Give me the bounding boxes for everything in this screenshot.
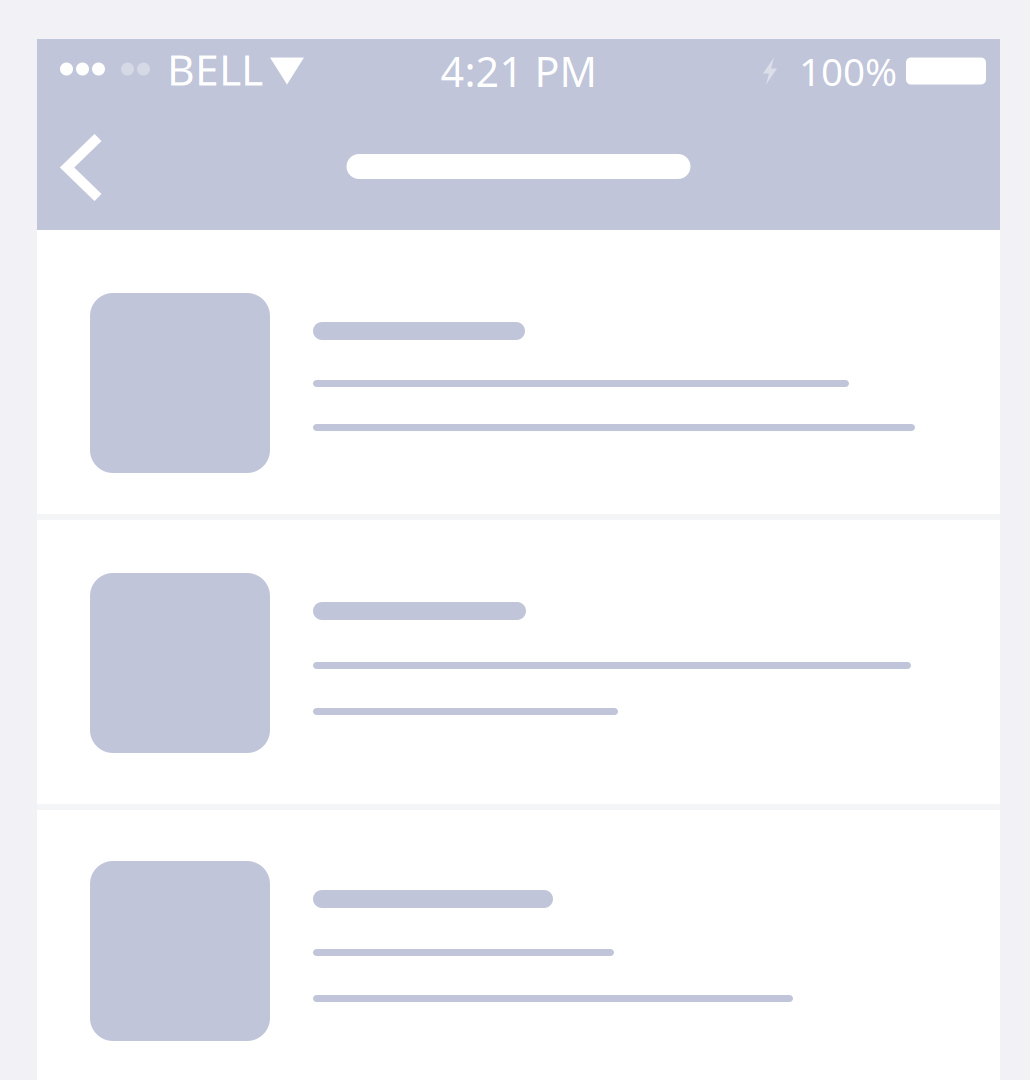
staticText: 100% <box>799 45 897 97</box>
button[interactable]: Loading item 1 <box>37 230 1000 514</box>
button[interactable]: Back <box>37 107 130 230</box>
button[interactable]: Loading item 2 <box>37 520 1000 804</box>
button[interactable]: Loading item 3 <box>37 810 1000 1080</box>
staticText: 4:21 PM <box>440 44 596 98</box>
staticText: BELL <box>167 41 263 97</box>
